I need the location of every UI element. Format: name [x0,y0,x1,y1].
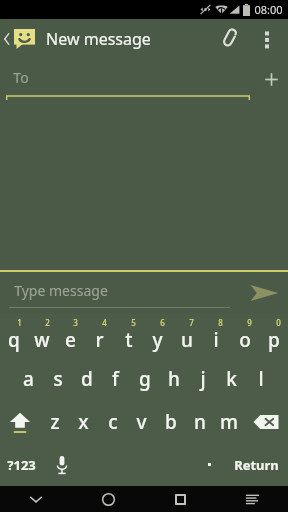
button[interactable]: v [127,400,156,443]
button[interactable]: Home [72,486,144,512]
button[interactable]: z [40,400,69,443]
staticText: 08:00 [254,2,283,17]
button[interactable] [194,443,224,486]
button[interactable]: ?123 [0,443,42,486]
staticText: 9 [247,317,252,328]
button[interactable]: Add recipient [254,58,288,100]
button[interactable]: g [130,357,159,400]
button[interactable]: Voice input [42,443,82,486]
button[interactable]: j [188,357,217,400]
staticText: n [194,409,206,435]
button[interactable]: c [98,400,127,443]
staticText: s [53,366,63,392]
staticText: g [139,366,151,392]
button[interactable]: Recent apps [144,486,216,512]
staticText: 6 [160,317,165,328]
staticText: 7 [189,317,194,328]
button[interactable]: l [246,357,275,400]
staticText: o [239,327,251,353]
staticText: v [136,409,147,435]
button[interactable]: w [28,314,56,357]
staticText: b [165,409,177,435]
button[interactable]: Return [224,443,288,486]
button[interactable]: a [13,357,43,400]
staticText: 3 [73,317,78,328]
staticText: a [23,366,34,392]
staticText: m [220,409,238,435]
staticText: ?123 [7,456,36,474]
staticText: 8 [218,317,223,328]
staticText: 5 [131,317,136,328]
staticText: New message [46,28,151,50]
button[interactable]: Hide keyboard [0,486,72,512]
button[interactable]: To [0,58,254,100]
button[interactable]: Attach [208,19,250,58]
button[interactable]: q [0,314,28,357]
staticText: q [8,327,20,353]
staticText: i [213,327,219,353]
button[interactable]: y [143,314,172,357]
staticText: l [258,366,264,392]
staticText: y [152,327,163,353]
staticText: 2 [45,317,50,328]
button[interactable]: m [214,400,243,443]
button[interactable]: s [43,357,72,400]
staticText: d [81,366,93,392]
button[interactable]: t [114,314,143,357]
button[interactable]: n [185,400,214,443]
staticText: h [168,366,180,392]
staticText: w [34,327,50,353]
staticText: p [268,327,280,353]
button[interactable]: Type message [0,272,240,314]
button[interactable]: d [72,357,101,400]
button[interactable]: Send [240,272,288,314]
button[interactable]: h [159,357,188,400]
staticText: u [181,327,193,353]
button[interactable]: b [156,400,185,443]
staticText: r [95,327,104,353]
button[interactable]: Menu [216,486,288,512]
staticText: x [78,409,89,435]
button[interactable]: k [217,357,246,400]
staticText: k [226,366,237,392]
button[interactable]: p [259,314,288,357]
staticText: j [200,366,206,392]
button[interactable]: Navigate up [0,19,39,58]
button[interactable]: Backspace [243,400,288,443]
staticText: f [112,366,119,392]
staticText: 0 [276,317,281,328]
button[interactable]: u [172,314,201,357]
button[interactable]: o [230,314,259,357]
button[interactable]: Shift [0,400,40,443]
staticText: Return [234,456,279,474]
staticText: t [125,327,133,353]
button[interactable]: More options [250,19,284,58]
button[interactable]: x [69,400,98,443]
button[interactable]: r [85,314,114,357]
staticText: e [65,327,76,353]
staticText: 4 [102,317,107,328]
button[interactable]: f [101,357,130,400]
staticText: 1 [17,317,22,328]
staticText: c [108,409,118,435]
staticText: Type message [14,281,108,300]
button[interactable]: i [201,314,230,357]
staticText: z [50,409,60,435]
staticText: To [13,68,29,87]
button[interactable]: e [56,314,85,357]
